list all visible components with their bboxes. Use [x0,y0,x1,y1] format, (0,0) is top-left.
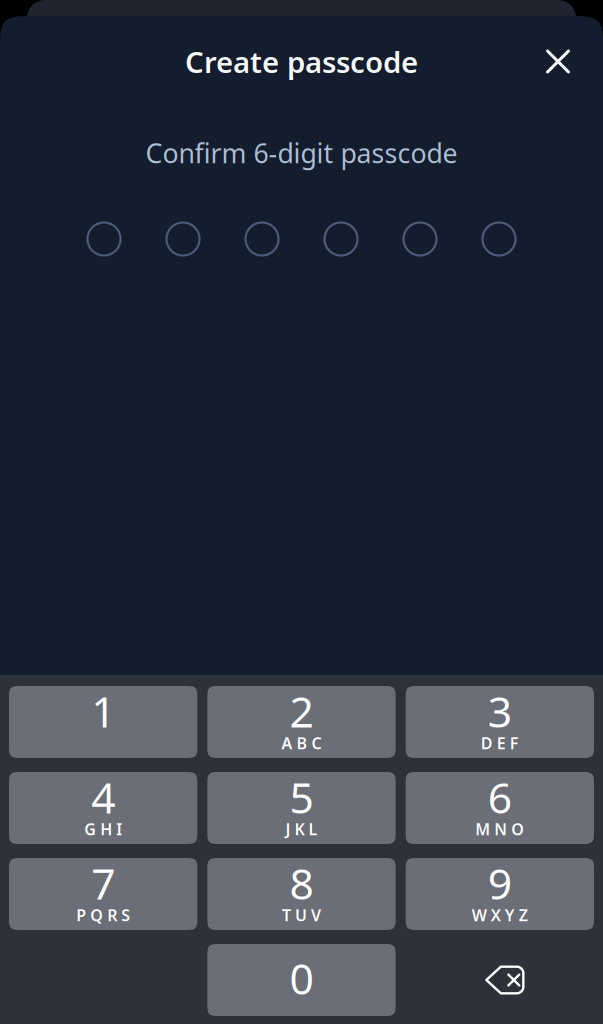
button[interactable]: 6 [406,772,594,844]
button[interactable]: 3 [406,686,594,758]
staticText: 8 [289,855,313,911]
staticText: 2 [289,683,313,739]
staticText: A B C [281,732,321,754]
button[interactable]: 2 [207,686,396,758]
button[interactable]: 8 [207,858,396,930]
staticText: 1 [91,683,115,739]
button[interactable]: 9 [406,858,594,930]
staticText: 6 [488,769,512,825]
staticText: W X Y Z [472,904,528,926]
staticText: 5 [289,769,313,825]
staticText: 0 [289,950,313,1006]
button[interactable]: 0 [207,944,396,1016]
button[interactable]: 5 [207,772,396,844]
staticText: 7 [91,855,115,911]
button[interactable]: Close [536,39,580,83]
staticText: M N O [475,818,524,840]
staticText: J K L [285,818,317,840]
staticText: T U V [282,904,321,926]
staticText: P Q R S [76,904,130,926]
staticText: 4 [91,769,115,825]
staticText: D E F [481,732,519,754]
staticText: Create passcode [185,42,418,81]
button[interactable]: 4 [9,772,197,844]
button[interactable]: Delete [406,944,594,1016]
staticText: 9 [488,855,512,911]
staticText: 3 [488,683,512,739]
staticText: Confirm 6-digit passcode [145,135,457,171]
button[interactable]: 1 [9,686,197,758]
staticText: G H I [84,818,122,840]
button[interactable]: 7 [9,858,197,930]
